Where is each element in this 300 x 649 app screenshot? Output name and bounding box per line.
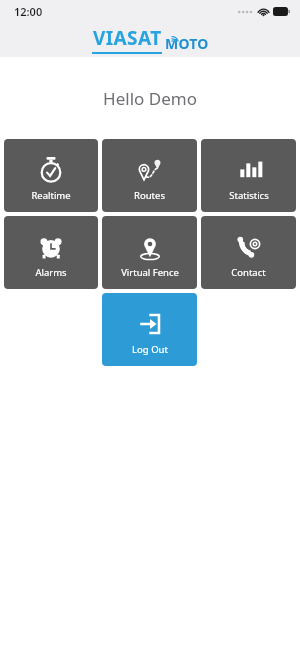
staticText: MOTO [165, 34, 209, 53]
staticText: Alarms [35, 266, 67, 279]
button[interactable]: Contact [201, 216, 296, 289]
staticText: Hello Demo [0, 87, 300, 110]
staticText: Routes [134, 189, 165, 202]
staticText: Realtime [31, 189, 71, 202]
button[interactable]: Statistics [201, 139, 296, 212]
staticText: Contact [231, 266, 266, 279]
button[interactable]: Virtual Fence [102, 216, 197, 289]
button[interactable]: Log Out [102, 293, 197, 366]
button[interactable]: Routes [102, 139, 197, 212]
staticText: Virtual Fence [121, 266, 179, 279]
staticText: Log Out [132, 343, 168, 356]
button[interactable]: Realtime [4, 139, 98, 212]
staticText: 12:00 [14, 4, 43, 19]
button[interactable]: Alarms [4, 216, 98, 289]
staticText: VIASAT [93, 25, 162, 51]
staticText: Statistics [229, 189, 269, 202]
